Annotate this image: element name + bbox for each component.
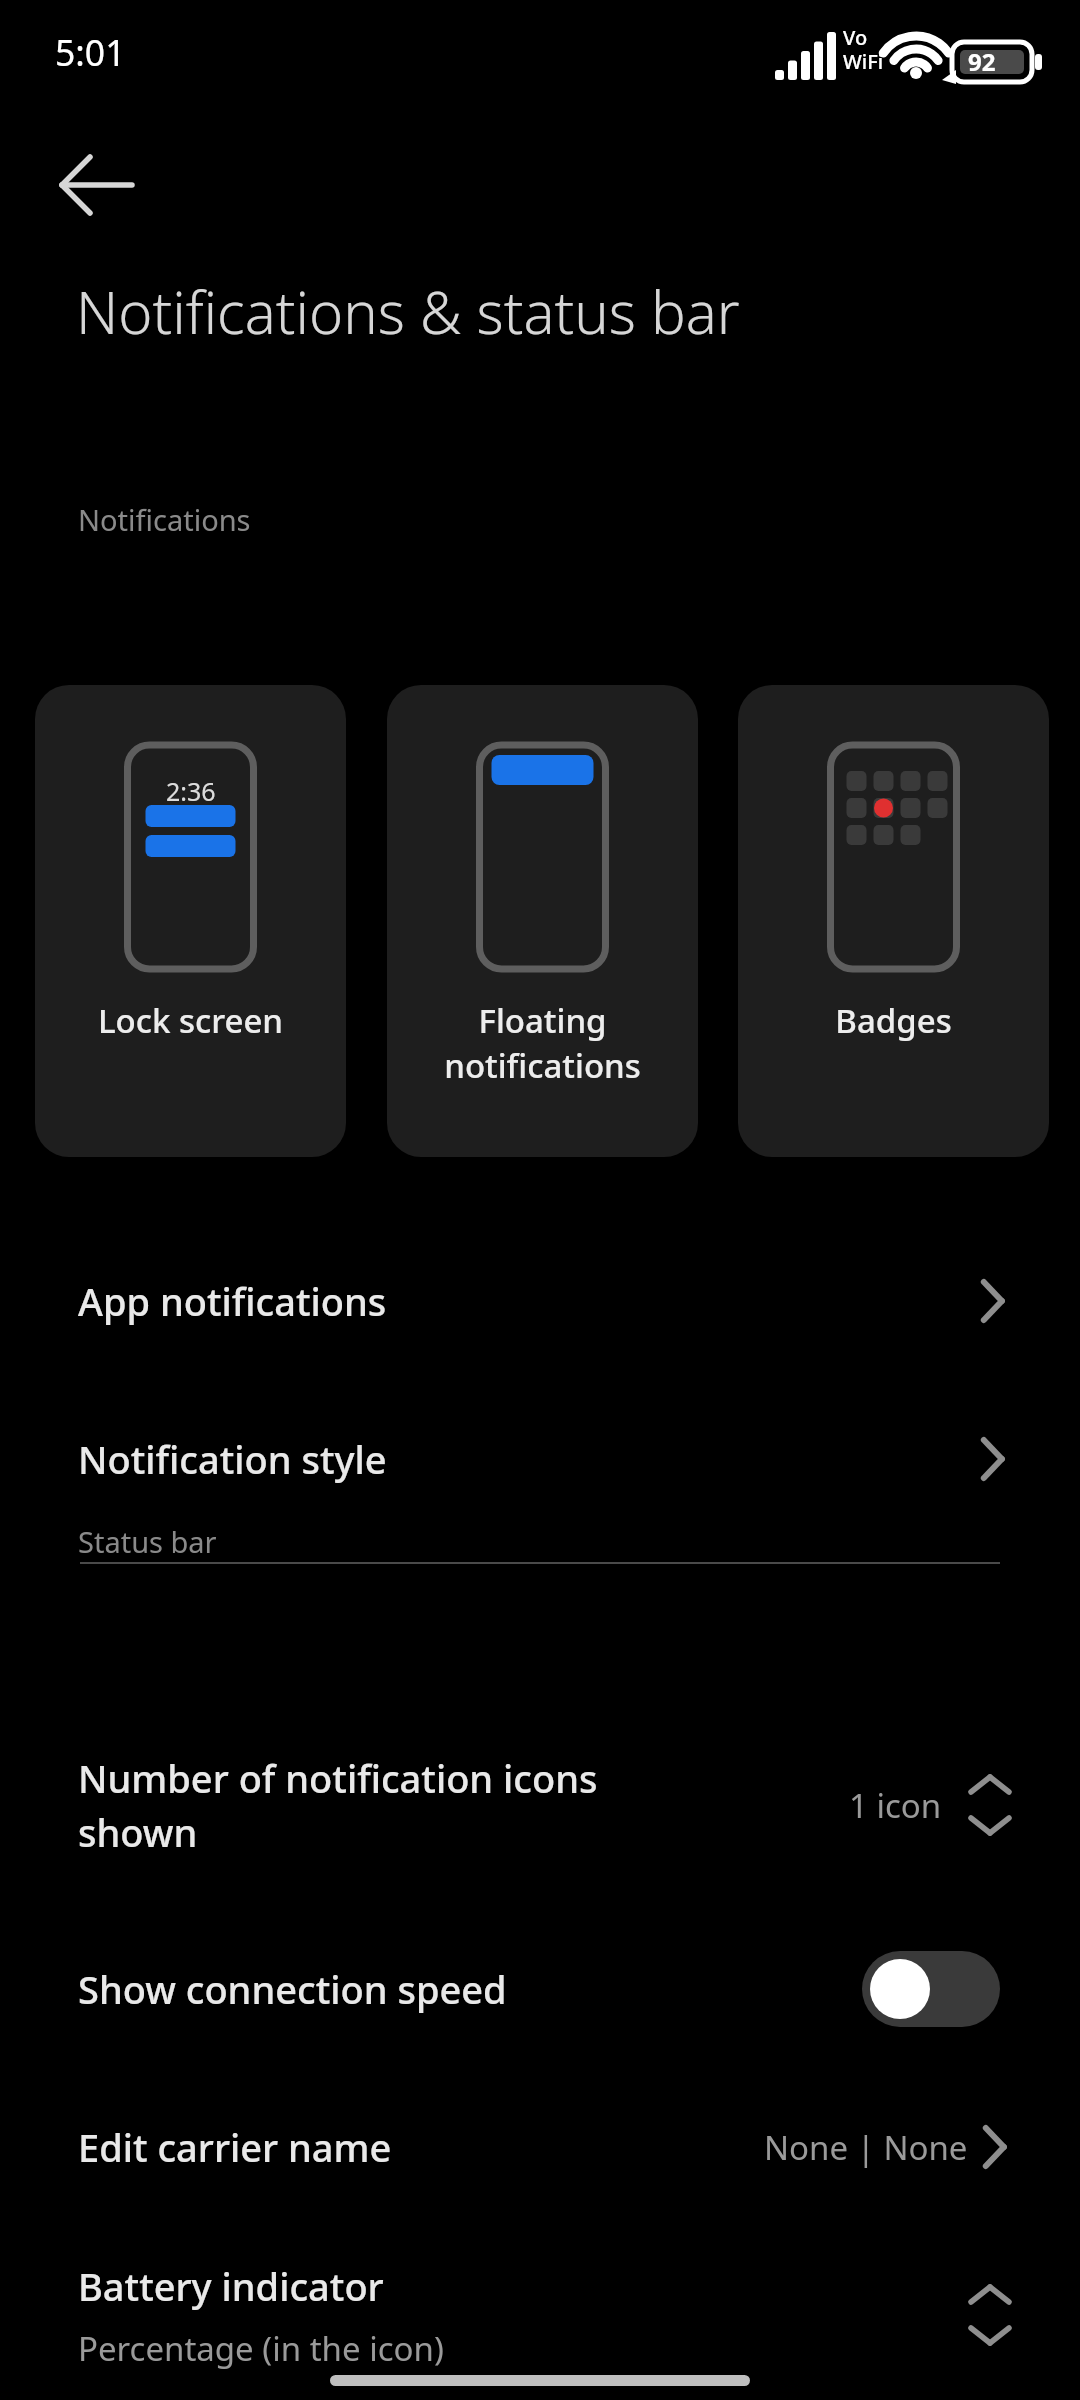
button[interactable]: Number of notification icons shown <box>0 1700 1080 1910</box>
staticText: Notification style <box>78 1433 974 1485</box>
button[interactable]: Battery indicator <box>0 2240 1080 2390</box>
staticText: Edit carrier name <box>78 2121 764 2173</box>
button[interactable]: Badges <box>738 685 1049 1157</box>
button[interactable]: Floating notifications <box>387 685 698 1157</box>
staticText: Vo <box>843 24 868 51</box>
button[interactable]: Notification style <box>0 1380 1080 1538</box>
staticText: Status bar <box>78 1522 217 1561</box>
staticText: Battery indicator <box>78 2260 384 2312</box>
staticText: Show connection speed <box>78 1963 862 2015</box>
button[interactable]: Back <box>40 130 150 240</box>
button[interactable]: Show connection speed toggle <box>862 1951 1000 2027</box>
staticText: Notifications <box>78 500 251 539</box>
staticText: None | None <box>764 2125 968 2170</box>
button[interactable]: Show connection speed <box>0 1910 1080 2068</box>
staticText: Badges <box>738 998 1049 1043</box>
staticText: WiFi <box>843 48 884 75</box>
button[interactable]: Edit carrier name <box>0 2068 1080 2226</box>
button[interactable]: App notifications <box>0 1222 1080 1380</box>
staticText: Number of notification icons shown <box>78 1752 708 1858</box>
staticText: 2:36 <box>166 774 216 808</box>
staticText: Lock screen <box>35 998 346 1043</box>
staticText: App notifications <box>78 1275 974 1327</box>
staticText: Floating notifications <box>387 998 698 1088</box>
staticText: 1 icon <box>849 1783 942 1828</box>
staticText: Notifications & status bar <box>76 272 740 351</box>
button[interactable]: Change value <box>958 2283 1022 2347</box>
staticText: 5:01 <box>55 28 126 76</box>
button[interactable]: 2:36 <box>35 685 346 1157</box>
staticText: 92 <box>968 45 996 78</box>
staticText: Percentage (in the icon) <box>78 2326 444 2371</box>
button[interactable]: Change value <box>958 1773 1022 1837</box>
